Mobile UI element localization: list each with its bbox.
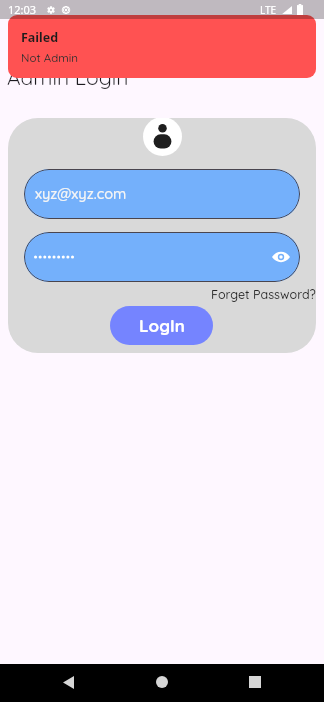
button[interactable]: Back (50, 664, 86, 700)
button[interactable]: Show password (270, 246, 292, 268)
staticText: LogIn (139, 315, 185, 336)
staticText: LTE (260, 3, 277, 17)
button[interactable]: Recent apps (237, 664, 273, 700)
staticText: Admin Login (7, 64, 129, 90)
staticText: xyz@xyz.com (35, 184, 127, 202)
button[interactable]: Forget Password? (211, 286, 316, 302)
staticText: 12:03 (8, 2, 37, 17)
button[interactable]: Home (144, 664, 180, 700)
staticText: Failed (21, 29, 59, 46)
button[interactable]: Failed (8, 15, 316, 78)
staticText: Not Admin (21, 50, 79, 64)
button[interactable]: LogIn (110, 306, 213, 345)
button[interactable]: Show password (24, 232, 300, 282)
button[interactable]: xyz@xyz.com (24, 169, 300, 219)
staticText: Forget Password? (211, 286, 316, 302)
